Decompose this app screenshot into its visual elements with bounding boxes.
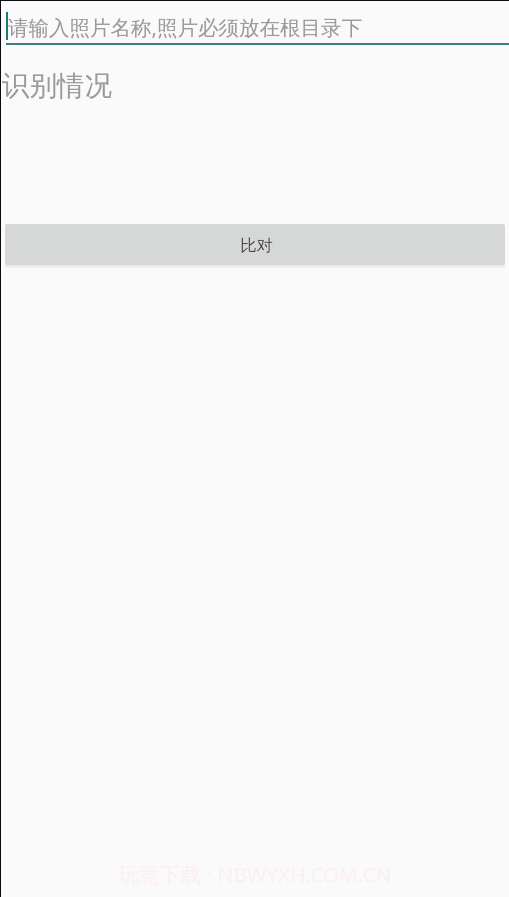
button[interactable]: 比对: [5, 224, 505, 265]
button[interactable]: 照片名称输入框: [0, 0, 509, 46]
staticText: 识别情况: [2, 69, 112, 104]
staticText: 玩意下载 · NBWYXH.COM.CN: [118, 860, 392, 888]
staticText: 请输入照片名称,照片必须放在根目录下: [8, 13, 362, 41]
staticText: 比对: [240, 235, 273, 256]
